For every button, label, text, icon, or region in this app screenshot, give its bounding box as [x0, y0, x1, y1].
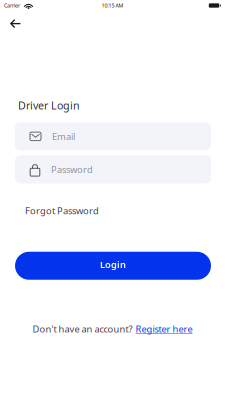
staticText: Login: [100, 258, 126, 270]
staticText: Carrier: [4, 2, 20, 9]
staticText: 10:15 AM: [101, 2, 123, 9]
staticText: Don't have an account?: [32, 323, 132, 335]
button[interactable]: Email: [15, 122, 211, 150]
button[interactable]: Back: [0, 11, 30, 35]
staticText: Driver Login: [18, 98, 80, 112]
button[interactable]: Password: [15, 155, 211, 183]
button[interactable]: Forgot Password: [25, 204, 99, 217]
staticText: Password: [51, 163, 93, 176]
button[interactable]: Register here: [135, 323, 192, 335]
button[interactable]: Login: [15, 252, 211, 280]
staticText: Email: [52, 130, 75, 143]
staticText: Forgot Password: [25, 204, 99, 217]
staticText: Register here: [135, 323, 192, 335]
